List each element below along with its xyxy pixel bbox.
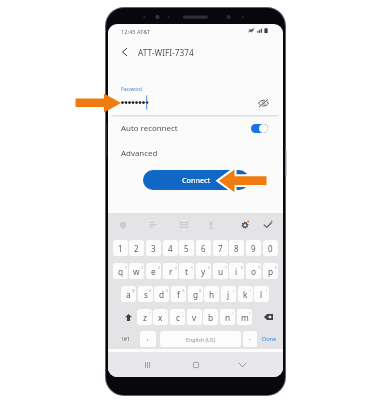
staticText: 12:45 AT&T	[121, 28, 151, 36]
staticText: ATT-WIFI-7374	[138, 47, 194, 58]
button[interactable]: Space	[160, 331, 241, 347]
staticText: .	[249, 333, 251, 342]
staticText: !#1	[122, 335, 131, 343]
button[interactable]: f	[171, 286, 186, 302]
staticText: f	[177, 289, 180, 300]
button[interactable]: Show password	[253, 94, 273, 112]
button[interactable]: z	[137, 309, 152, 325]
button[interactable]: v	[187, 309, 202, 325]
button[interactable]: Keyboard tool 3	[176, 217, 192, 233]
button[interactable]: Navigate up	[116, 41, 132, 63]
button[interactable]: 4	[163, 240, 178, 256]
button[interactable]: g	[188, 286, 203, 302]
staticText: u	[218, 266, 224, 277]
staticText: r	[169, 266, 173, 277]
button[interactable]: 3	[146, 240, 161, 256]
staticText: n	[225, 312, 231, 323]
staticText: j	[227, 289, 230, 300]
staticText: 5	[184, 243, 189, 254]
staticText: &	[199, 288, 202, 292]
button[interactable]: 0	[263, 240, 278, 256]
button[interactable]: i	[229, 263, 244, 279]
staticText: k	[243, 289, 248, 300]
button[interactable]: 5	[179, 240, 194, 256]
button[interactable]: Hide keyboard	[234, 358, 250, 372]
button[interactable]: p	[263, 263, 278, 279]
button[interactable]: Keyboard tool 5	[237, 217, 253, 233]
staticText: -	[216, 288, 218, 292]
staticText: z	[143, 312, 147, 323]
button[interactable]: k	[238, 286, 253, 302]
button[interactable]: n	[220, 309, 235, 325]
button[interactable]: Period	[243, 331, 257, 347]
button[interactable]: q	[113, 263, 128, 279]
staticText: h	[209, 289, 215, 300]
staticText: 8	[241, 265, 243, 269]
button[interactable]: y	[196, 263, 211, 279]
button[interactable]: e	[146, 263, 161, 279]
staticText: m	[241, 312, 249, 323]
button[interactable]: c	[170, 309, 185, 325]
button[interactable]: 8	[229, 240, 244, 256]
button[interactable]: Shift	[120, 309, 136, 325]
button[interactable]: o	[246, 263, 261, 279]
staticText: 4	[168, 243, 173, 254]
button[interactable]: Auto reconnect	[121, 118, 268, 138]
staticText: p	[268, 266, 274, 277]
button[interactable]: a	[121, 286, 136, 302]
staticText: x	[158, 312, 163, 323]
button[interactable]: Recent apps	[139, 358, 155, 372]
staticText: :	[199, 311, 200, 315]
button[interactable]: Done	[260, 331, 279, 347]
button[interactable]: Connect	[143, 170, 249, 190]
staticText: 8	[234, 243, 239, 254]
button[interactable]: t	[179, 263, 194, 279]
button[interactable]: r	[163, 263, 178, 279]
staticText: o	[251, 266, 257, 277]
button[interactable]: Comma	[140, 331, 156, 347]
button[interactable]: !#1	[117, 331, 135, 347]
button[interactable]: Keyboard tool 1	[115, 217, 131, 233]
button[interactable]: Backspace	[260, 309, 277, 325]
staticText: c	[176, 312, 180, 323]
button[interactable]: b	[203, 309, 218, 325]
staticText: s	[144, 289, 148, 300]
button[interactable]: s	[138, 286, 153, 302]
staticText: t	[185, 266, 188, 277]
staticText: 2	[134, 243, 139, 254]
button[interactable]: 1	[113, 240, 128, 256]
staticText: %	[182, 288, 185, 292]
button[interactable]: Keyboard tool 6	[260, 217, 276, 233]
staticText: 9	[251, 243, 256, 254]
button[interactable]: Advanced	[121, 143, 283, 163]
button[interactable]: Keyboard tool 2	[145, 217, 161, 233]
staticText: 6	[208, 265, 210, 269]
staticText: 9	[258, 265, 260, 269]
button[interactable]: 2	[129, 240, 144, 256]
button[interactable]: u	[213, 263, 228, 279]
staticText: (	[250, 288, 251, 292]
button[interactable]: l	[254, 286, 269, 302]
staticText: q	[118, 266, 124, 277]
button[interactable]: m	[237, 309, 252, 325]
button[interactable]: h	[204, 286, 219, 302]
button[interactable]: Keyboard tool 4	[203, 217, 219, 233]
button[interactable]: x	[153, 309, 168, 325]
staticText: 0	[275, 265, 277, 269]
staticText: Connect	[182, 175, 211, 185]
staticText: 0	[268, 243, 273, 254]
staticText: 6	[201, 243, 206, 254]
button[interactable]: d	[154, 286, 169, 302]
button[interactable]: 9	[246, 240, 261, 256]
staticText: 3	[158, 265, 160, 269]
staticText: i	[235, 266, 238, 277]
button[interactable]: Home	[188, 358, 204, 372]
button[interactable]: w	[129, 263, 144, 279]
staticText: 1	[125, 265, 127, 269]
staticText: d	[159, 289, 165, 300]
button[interactable]: 7	[213, 240, 228, 256]
button[interactable]: 6	[196, 240, 211, 256]
button[interactable]: j	[221, 286, 236, 302]
staticText: #	[149, 288, 152, 292]
staticText: g	[193, 289, 199, 300]
